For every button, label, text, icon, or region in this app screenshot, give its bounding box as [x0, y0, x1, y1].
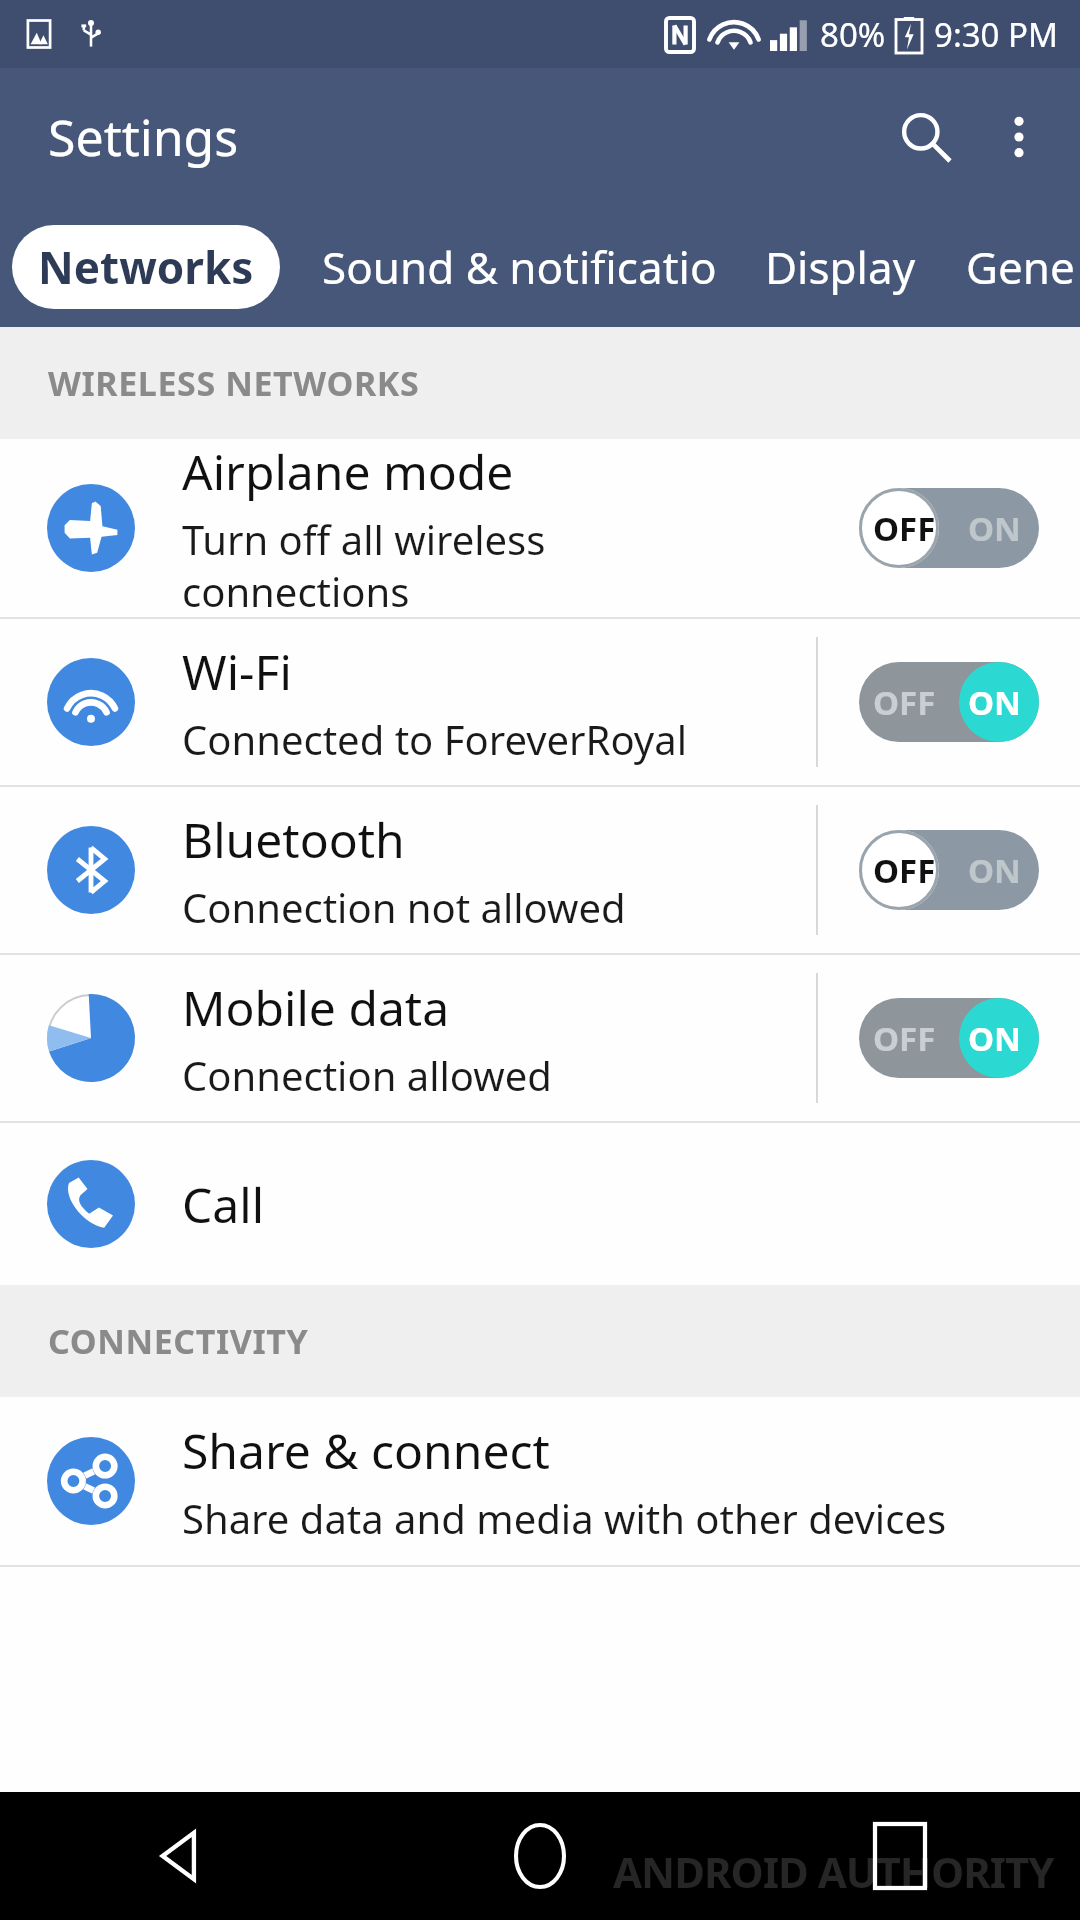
- staticText: Wi-Fi: [182, 639, 292, 704]
- staticText: Mobile data: [182, 975, 450, 1040]
- staticText: WIRELESS NETWORKS: [48, 360, 420, 406]
- button[interactable]: Sound & notificatio: [322, 237, 717, 297]
- staticText: Connected to ForeverRoyal: [182, 712, 687, 766]
- staticText: Airplane mode: [182, 439, 514, 504]
- staticText: Call: [182, 1172, 265, 1237]
- staticText: General: [966, 237, 1080, 297]
- staticText: ON: [968, 848, 1021, 893]
- staticText: Share & connect: [182, 1418, 550, 1483]
- staticText: Sound & notificatio: [322, 237, 717, 297]
- staticText: Settings: [48, 103, 239, 171]
- staticText: OFF: [873, 680, 936, 725]
- button[interactable]: More options: [974, 92, 1064, 182]
- button[interactable]: Home: [360, 1792, 720, 1920]
- button[interactable]: Back: [0, 1792, 360, 1920]
- staticText: Networks: [38, 237, 254, 297]
- button[interactable]: Networks: [12, 225, 280, 309]
- staticText: Share data and media with other devices: [182, 1491, 947, 1545]
- staticText: OFF: [873, 848, 936, 893]
- staticText: Connection allowed: [182, 1048, 552, 1102]
- button[interactable]: General: [966, 237, 1080, 297]
- button[interactable]: Share & connect: [0, 1397, 1080, 1565]
- button[interactable]: Wi-Fi: [0, 619, 1080, 785]
- button[interactable]: Mobile data: [0, 955, 1080, 1121]
- staticText: Bluetooth: [182, 807, 405, 872]
- button[interactable]: Off: [859, 830, 1039, 910]
- staticText: Connection not allowed: [182, 880, 626, 934]
- button[interactable]: Bluetooth: [0, 787, 1080, 953]
- button[interactable]: Recent apps: [720, 1792, 1080, 1920]
- button[interactable]: Display: [765, 237, 916, 297]
- staticText: CONNECTIVITY: [48, 1318, 309, 1364]
- staticText: Display: [765, 237, 916, 297]
- staticText: OFF: [873, 1016, 936, 1061]
- button[interactable]: Airplane mode: [0, 439, 1080, 617]
- staticText: 80%: [820, 12, 886, 57]
- button[interactable]: Search: [878, 89, 974, 185]
- staticText: ON: [968, 506, 1021, 551]
- button[interactable]: On: [859, 998, 1039, 1078]
- staticText: 9:30 PM: [934, 12, 1058, 57]
- button[interactable]: Call: [0, 1123, 1080, 1285]
- staticText: ON: [968, 680, 1021, 725]
- staticText: OFF: [873, 506, 936, 551]
- staticText: Turn off all wireless connections: [182, 512, 546, 617]
- staticText: ON: [968, 1016, 1021, 1061]
- button[interactable]: Off: [859, 488, 1039, 568]
- staticText: ANDROID AUTHORITY: [613, 1843, 1054, 1900]
- button[interactable]: On: [859, 662, 1039, 742]
